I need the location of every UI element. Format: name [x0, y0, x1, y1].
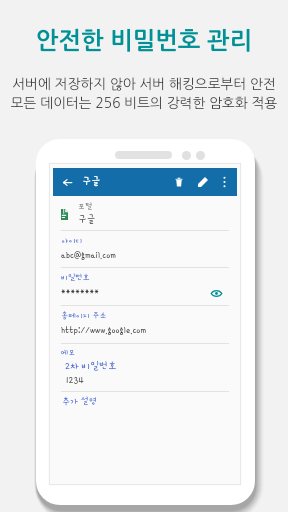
button[interactable]: 포털 — [50, 196, 240, 230]
staticText: 메모 — [61, 348, 76, 357]
button[interactable]: 추가 설명 — [50, 391, 240, 415]
staticText: 포털 — [78, 202, 93, 211]
staticText: 구글 — [78, 213, 96, 224]
button[interactable]: 홈페이지 주소 — [50, 305, 240, 343]
staticText: ******** — [61, 287, 99, 297]
staticText: 서버에 저장하지 않아 서버 해킹으로부터 안전 모든 데이터는 256 비트의… — [0, 77, 288, 110]
staticText: 홈페이지 주소 — [61, 311, 107, 320]
button[interactable]: Show password — [209, 286, 223, 300]
button[interactable]: 메모 — [50, 343, 240, 391]
staticText: abc@gmail.com — [61, 250, 116, 260]
button[interactable]: Delete — [167, 168, 191, 196]
button[interactable]: More options — [215, 168, 233, 196]
staticText: http://www.google.com — [61, 325, 146, 335]
staticText: 안전한 비밀번호 관리 — [0, 29, 288, 53]
staticText: 2차 비밀번호 — [65, 360, 117, 371]
staticText: 추가 설명 — [62, 396, 97, 406]
button[interactable]: Back — [57, 168, 77, 196]
button[interactable]: Edit — [191, 168, 215, 196]
staticText: 아이디 — [61, 236, 83, 245]
button[interactable]: 아이디 — [50, 230, 240, 268]
button[interactable]: 비밀번호 — [50, 267, 240, 305]
staticText: 비밀번호 — [61, 273, 90, 282]
staticText: 구글 — [82, 175, 101, 187]
staticText: 1234 — [66, 374, 84, 385]
